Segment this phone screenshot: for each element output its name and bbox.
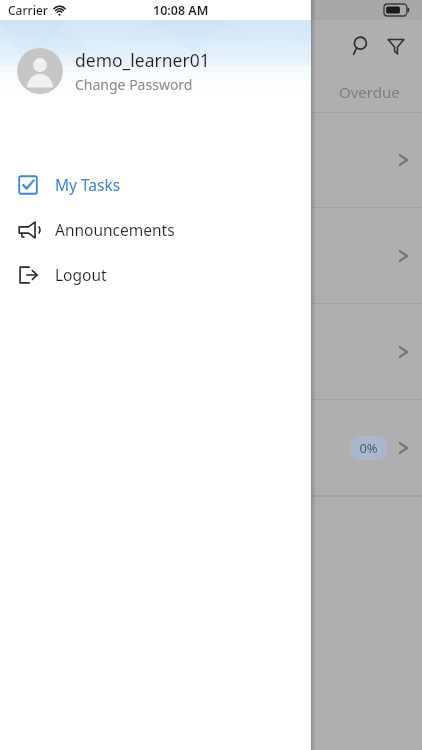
staticText: Announcements: [55, 219, 175, 240]
button[interactable]: Filter: [380, 30, 412, 62]
button[interactable]: 0%: [0, 400, 422, 495]
button[interactable]: [0, 304, 422, 399]
button[interactable]: [0, 113, 422, 207]
staticText: My Tasks: [55, 174, 121, 195]
staticText: Logout: [55, 264, 107, 285]
button[interactable]: Search: [346, 30, 378, 62]
staticText: demo_learner01: [75, 48, 210, 72]
button[interactable]: Announcements: [0, 207, 311, 252]
staticText: Change Password: [75, 75, 193, 94]
staticText: Overdue: [339, 82, 400, 102]
staticText: Carrier: [8, 2, 48, 18]
button[interactable]: Change Password: [75, 75, 193, 94]
button[interactable]: [0, 208, 422, 303]
staticText: 10:08 AM: [153, 2, 209, 19]
button[interactable]: Logout: [0, 252, 311, 297]
staticText: 0%: [359, 439, 378, 457]
button[interactable]: My Tasks: [0, 162, 311, 207]
